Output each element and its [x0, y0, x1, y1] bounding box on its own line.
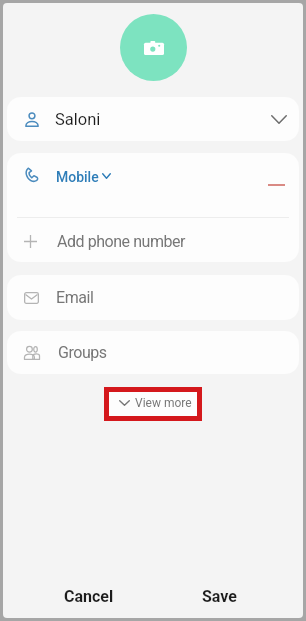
staticText: Add phone number: [57, 232, 186, 251]
button[interactable]: View more: [109, 392, 197, 416]
button[interactable]: Saloni: [7, 97, 299, 141]
staticText: Groups: [58, 343, 107, 362]
button[interactable]: Cancel: [24, 575, 154, 618]
button[interactable]: Groups: [7, 331, 299, 374]
staticText: Saloni: [55, 110, 101, 129]
button[interactable]: Remove phone number: [256, 153, 296, 217]
staticText: Save: [202, 587, 237, 606]
button[interactable]: Add phone number: [7, 220, 299, 262]
staticText: Mobile: [56, 169, 99, 185]
button[interactable]: Change profile picture: [120, 14, 187, 81]
staticText: View more: [135, 396, 192, 410]
button[interactable]: Email: [7, 275, 299, 320]
button[interactable]: Mobile: [7, 153, 299, 217]
button[interactable]: Save: [154, 575, 285, 618]
staticText: Email: [56, 288, 94, 307]
staticText: Cancel: [64, 587, 114, 606]
